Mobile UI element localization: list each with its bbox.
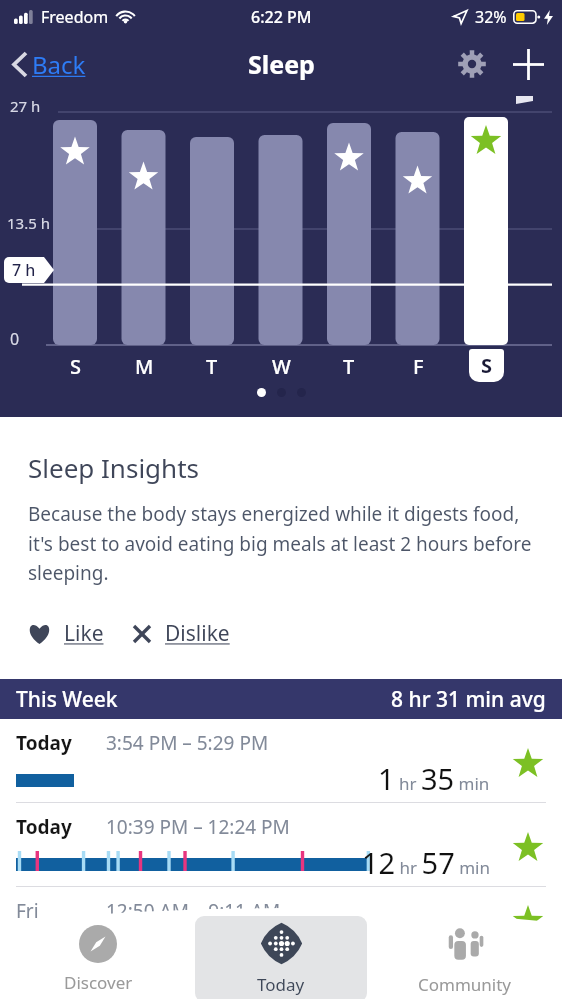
staticText: Sleep Insights <box>28 450 200 485</box>
staticText: This Week <box>16 685 118 714</box>
staticText: Fri <box>16 898 106 924</box>
staticText: 3:54 PM – 5:29 PM <box>106 730 269 756</box>
staticText: Today <box>16 814 106 840</box>
button[interactable]: Discover <box>28 919 168 999</box>
button[interactable]: Today <box>0 803 562 886</box>
staticText: 13.5 h <box>7 213 50 233</box>
staticText: Sleep <box>248 47 315 81</box>
staticText: Back <box>32 48 86 81</box>
staticText: 10:39 PM – 12:24 PM <box>106 814 290 840</box>
staticText: 6:22 PM <box>251 6 312 28</box>
staticText: Dislike <box>165 619 230 648</box>
staticText: T <box>206 353 218 379</box>
staticText: 7 h <box>12 259 36 281</box>
staticText: S <box>481 352 493 379</box>
button[interactable]: Add <box>506 42 550 86</box>
staticText: T <box>343 353 355 379</box>
staticText: Community <box>418 973 512 996</box>
staticText: Discover <box>64 971 133 994</box>
button[interactable]: Fri <box>0 887 562 982</box>
staticText: W <box>272 353 291 379</box>
button[interactable]: Settings <box>450 42 494 86</box>
button[interactable]: Like <box>28 615 104 652</box>
staticText: Like <box>64 619 104 648</box>
staticText: 8 hr 31 min avg <box>391 685 546 714</box>
button[interactable]: Today <box>0 719 562 802</box>
button[interactable]: Today <box>195 916 367 999</box>
staticText: S <box>70 353 81 379</box>
button[interactable]: Community <box>395 919 535 999</box>
staticText: 0 <box>10 328 20 350</box>
staticText: Today <box>16 730 106 756</box>
button[interactable]: Dislike <box>132 615 230 652</box>
staticText: Today <box>257 973 305 996</box>
staticText: 12:50 AM – 9:11 AM <box>106 898 281 924</box>
staticText: F <box>413 353 424 379</box>
staticText: 32% <box>475 6 507 28</box>
staticText: 1 hr 35 min <box>378 759 490 798</box>
staticText: 12 hr 57 min <box>362 843 490 882</box>
button[interactable]: Back <box>8 42 90 87</box>
staticText: M <box>135 353 154 379</box>
staticText: Because the body stays energized while i… <box>28 501 534 585</box>
staticText: Freedom <box>41 6 109 28</box>
staticText: 27 h <box>10 96 41 116</box>
